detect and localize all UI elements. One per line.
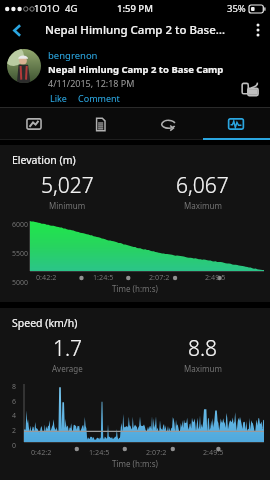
staticText: 2:49:5 [205,272,226,282]
staticText: 35% [227,2,246,15]
staticText: 1.7 [53,334,83,363]
staticText: 0 [2,441,16,451]
staticText: 5000 [2,278,28,288]
staticText: Comment [78,92,120,104]
staticText: Nepal Himlung Camp 2 to Base… [45,22,226,38]
staticText: 4 [2,411,16,421]
button[interactable]: Charts [202,108,270,140]
button[interactable]: Like [48,91,69,105]
staticText: 5500 [2,249,28,259]
staticText: Nepal Himlung Camp 2 to Base Camp [48,63,224,76]
staticText: 2:49:5 [203,447,224,457]
staticText: 6 [2,397,16,407]
staticText: 8 [2,382,16,392]
staticText: 1:24:5 [93,272,114,282]
staticText: 2:07:2 [146,447,167,457]
staticText: 1:24:5 [89,447,110,457]
button[interactable]: Map [0,108,67,140]
staticText: 4/11/2015, 12:18 PM [48,77,135,89]
staticText: Speed (km/h) [12,316,78,330]
button[interactable]: bengrenon [0,44,270,108]
staticText: Maximum [184,363,222,374]
staticText: Elevation (m) [12,153,76,167]
staticText: 1:59 PM [117,2,153,15]
staticText: 0:42:2 [36,272,57,282]
button[interactable]: Share [236,75,264,103]
staticText: Like [50,92,67,104]
staticText: 8.8 [188,334,218,363]
staticText: 2:07:2 [149,272,170,282]
staticText: Time (h:m:s) [112,458,158,469]
button[interactable]: Laps [134,108,202,140]
staticText: bengrenon [48,49,98,62]
staticText: 2 [2,426,16,436]
button[interactable]: Elevation (m) [0,145,270,302]
staticText: 0:42:2 [31,447,52,457]
button[interactable]: Speed (km/h) [0,308,270,480]
button[interactable]: More options [246,16,270,44]
staticText: Time (h:m:s) [112,283,158,294]
staticText: 5,027 [41,171,94,200]
staticText: 1O1O [34,2,60,15]
button[interactable]: Comment [76,91,122,105]
button[interactable]: Back [0,16,34,44]
staticText: Maximum [184,200,222,211]
staticText: 6000 [2,220,28,230]
staticText: Minimum [49,200,86,211]
staticText: 6,067 [176,171,229,200]
staticText: 4G [65,2,78,15]
staticText: Average [52,363,83,374]
button[interactable]: Details [67,108,134,140]
